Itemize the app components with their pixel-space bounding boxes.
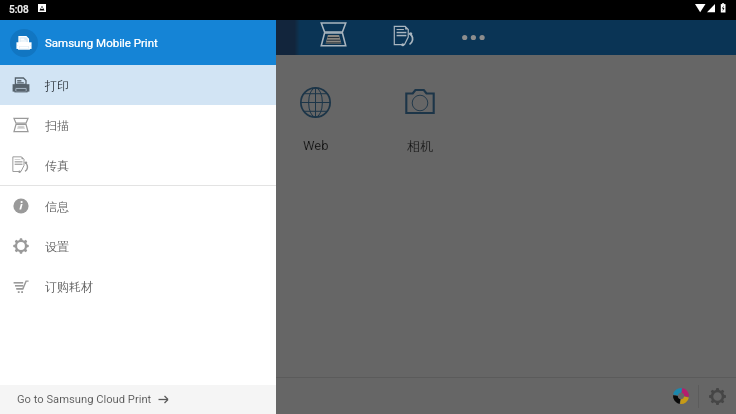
button[interactable]: Supplies — [673, 388, 689, 404]
button[interactable]: Go to Samsung Cloud Print — [0, 385, 276, 414]
staticText: Samsung Mobile Print — [45, 36, 158, 49]
staticText: 传真 — [45, 158, 69, 173]
button[interactable]: Settings — [709, 388, 726, 405]
staticText: 订购耗材 — [45, 279, 93, 294]
button[interactable]: Scan — [320, 21, 347, 48]
button[interactable]: 扫描 — [0, 105, 276, 145]
staticText: 相机 — [407, 138, 433, 154]
button[interactable]: 订购耗材 — [0, 266, 276, 306]
button[interactable]: 设置 — [0, 226, 276, 266]
staticText: 5:08 — [9, 4, 29, 16]
staticText: 设置 — [45, 239, 69, 254]
staticText: Go to Samsung Cloud Print — [17, 393, 152, 406]
button[interactable]: More options — [458, 26, 490, 49]
button[interactable]: 打印 — [0, 65, 276, 105]
button[interactable]: 传真 — [0, 145, 276, 185]
button[interactable]: Web — [293, 81, 338, 151]
button[interactable]: Samsung Mobile Print — [0, 20, 276, 65]
button[interactable]: 相机 — [397, 81, 442, 151]
staticText: 信息 — [45, 199, 69, 214]
staticText: Web — [303, 138, 329, 153]
button[interactable]: Fax — [392, 24, 417, 49]
button[interactable]: 信息 — [0, 186, 276, 226]
staticText: 扫描 — [45, 118, 69, 133]
staticText: 打印 — [45, 78, 69, 93]
